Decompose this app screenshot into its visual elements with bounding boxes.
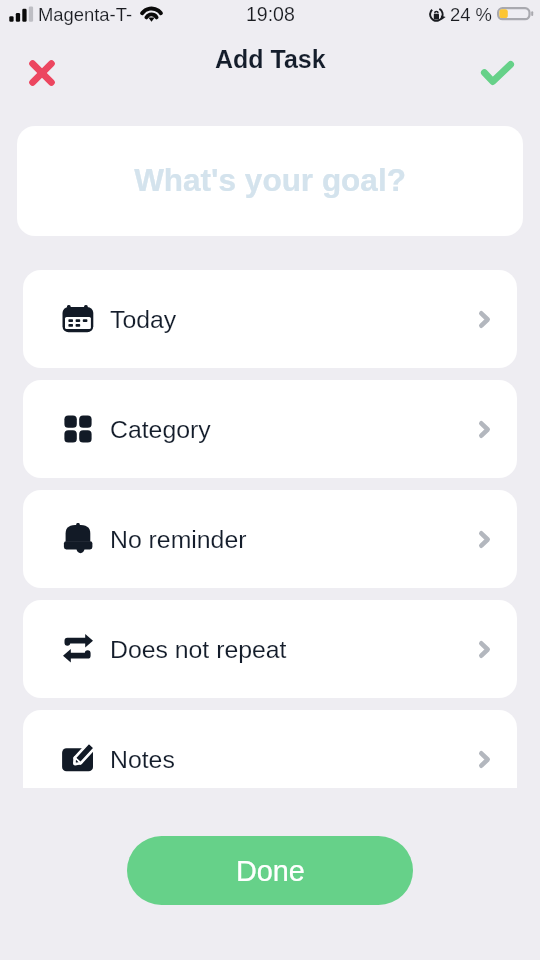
staticText: Add Task	[215, 45, 326, 73]
staticText: No reminder	[110, 526, 247, 554]
button[interactable]: Today	[23, 270, 517, 368]
staticText: What's your goal?	[134, 162, 406, 197]
button[interactable]: Close	[17, 48, 66, 97]
staticText: Does not repeat	[110, 636, 287, 664]
button[interactable]: Category	[23, 380, 517, 478]
staticText: 24 %	[450, 4, 492, 25]
staticText: Notes	[110, 746, 175, 774]
button[interactable]: Done	[127, 836, 413, 905]
button[interactable]: No reminder	[23, 490, 517, 588]
button[interactable]: What's your goal?	[17, 126, 523, 236]
button[interactable]: Notes	[23, 710, 517, 788]
staticText: 19:08	[246, 3, 295, 25]
staticText: Done	[236, 855, 305, 887]
staticText: Category	[110, 416, 211, 444]
staticText: Magenta-T-	[38, 4, 133, 25]
button[interactable]: Does not repeat	[23, 600, 517, 698]
button[interactable]: Confirm	[473, 48, 522, 97]
staticText: Today	[110, 306, 177, 334]
